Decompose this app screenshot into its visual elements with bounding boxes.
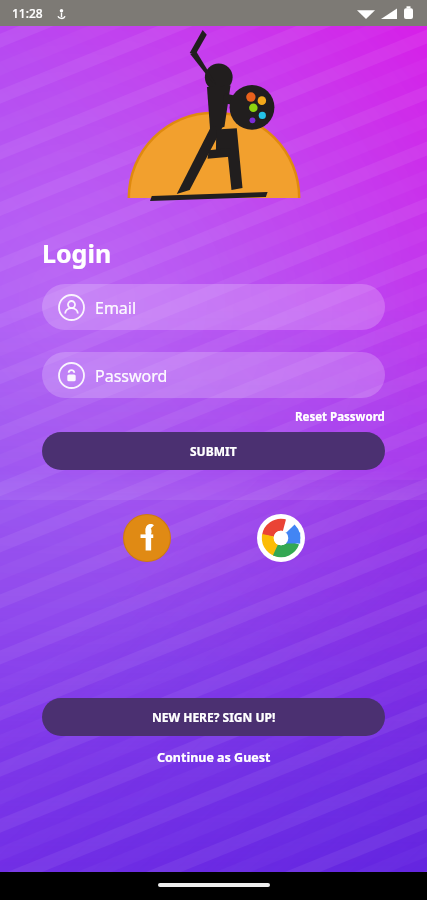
staticText: Login bbox=[42, 236, 112, 270]
button[interactable]: Sign in with Facebook bbox=[121, 512, 173, 564]
staticText: Password bbox=[95, 365, 168, 387]
staticText: Continue as Guest bbox=[157, 749, 271, 766]
staticText: NEW HERE? SIGN UP! bbox=[152, 709, 276, 725]
staticText: 11:28 bbox=[12, 5, 43, 21]
staticText: SUBMIT bbox=[190, 443, 237, 459]
button[interactable]: Email bbox=[42, 284, 385, 330]
staticText: Reset Password bbox=[295, 409, 385, 425]
button[interactable]: SUBMIT bbox=[42, 432, 385, 470]
staticText: Email bbox=[95, 297, 137, 319]
button[interactable]: NEW HERE? SIGN UP! bbox=[42, 698, 385, 736]
button[interactable]: Continue as Guest bbox=[147, 746, 281, 769]
button[interactable]: Password bbox=[42, 352, 385, 398]
button[interactable]: Reset Password bbox=[287, 407, 427, 427]
button[interactable]: Sign in with Google bbox=[255, 512, 307, 564]
